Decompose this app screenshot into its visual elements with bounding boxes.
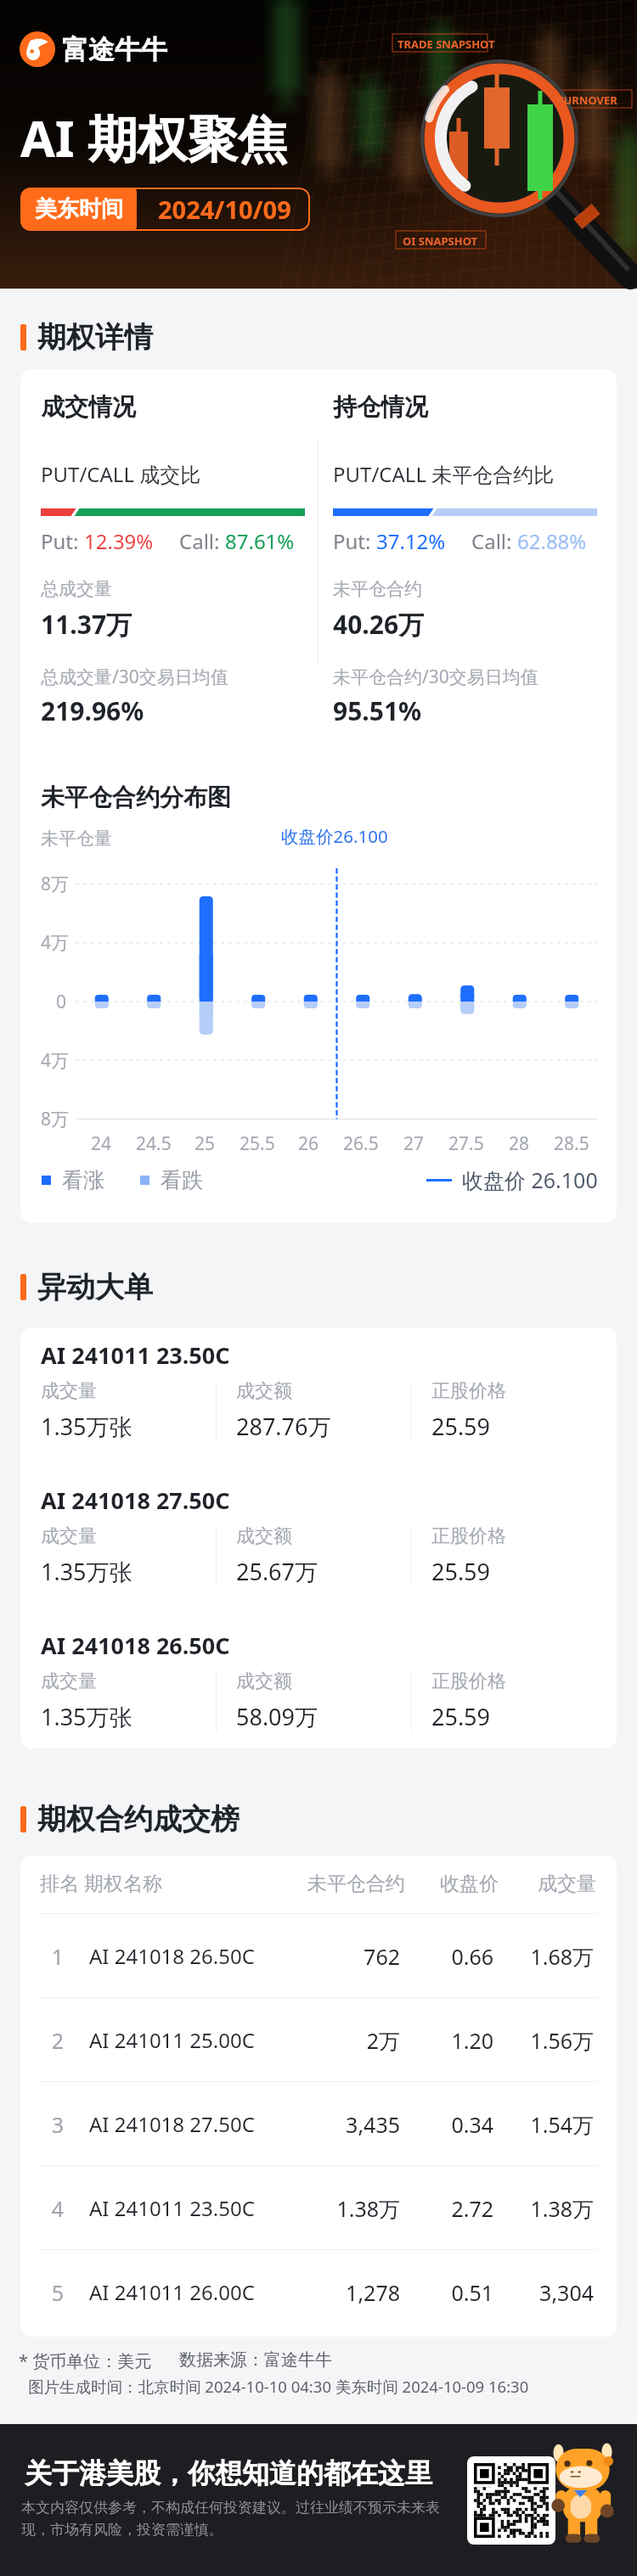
staticText: 4 [40,2194,76,2223]
staticText: 总成交量/30交易日均值 [41,665,228,689]
staticText: 3,304 [496,2278,594,2307]
staticText: 1 [40,1942,76,1971]
staticText: PUT/CALL 未平仓合约比 [333,460,555,488]
staticText: 12.39% [84,527,154,555]
staticText: 未平仓合约分布图 [41,783,231,812]
staticText: 28.5 [554,1131,589,1156]
staticText: 24.5 [136,1131,172,1156]
staticText: 数据来源：富途牛牛 [179,2349,332,2371]
staticText: 24 [91,1131,112,1156]
staticText: 收盘价 [411,1872,499,1896]
staticText: 美东时间 [35,195,123,223]
staticText: 4万 [41,1048,70,1073]
staticText: 正股价格 [431,1524,506,1548]
staticText: 期权名称 [84,1872,162,1896]
staticText: 富途牛牛 [62,33,167,66]
staticText: TURNOVER [557,93,617,108]
staticText: 287.76万 [236,1411,331,1442]
staticText: 异动大单 [37,1269,153,1305]
staticText: 2024/10/09 [158,193,291,226]
staticText: AI 241018 27.50C [41,1484,230,1516]
staticText: 37.12% [376,527,446,555]
staticText: 收盘价 26.100 [462,1165,598,1194]
staticText: 0 [56,990,67,1014]
staticText: 未平仓量 [41,828,112,850]
staticText: 2.72 [403,2194,493,2223]
button[interactable]: 5 [20,2250,617,2334]
staticText: 11.37万 [41,607,132,642]
staticText: 40.26万 [333,607,425,642]
staticText: 1.68万 [496,1942,594,1971]
staticText: 25.5 [240,1131,275,1156]
staticText: 5 [40,2278,76,2307]
staticText: 219.96% [41,693,144,728]
staticText: 成交情况 [41,392,136,422]
staticText: Call: [179,527,225,555]
button[interactable]: AI 241018 27.50C [20,1476,617,1614]
staticText: 未平仓合约/30交易日均值 [333,665,538,689]
staticText: 0.34 [403,2110,493,2139]
staticText: 看涨 [62,1167,104,1193]
staticText: Put: [41,527,84,555]
staticText: 25.59 [431,1556,491,1587]
staticText: 26.5 [343,1131,379,1156]
button[interactable]: 1 [20,1914,617,1998]
staticText: 1.56万 [496,2026,594,2055]
staticText: 成交额 [236,1524,292,1548]
staticText: 25.67万 [236,1556,318,1587]
staticText: 8万 [41,1107,70,1131]
staticText: 成交额 [236,1670,292,1693]
staticText: 62.88% [517,527,587,555]
button[interactable]: 4 [20,2166,617,2250]
staticText: * 货币单位：美元 [19,2349,152,2372]
staticText: AI 241018 26.50C [41,1630,230,1661]
staticText: 成交量 [41,1524,97,1548]
staticText: 4万 [41,930,70,955]
staticText: 未平仓合约 [275,1872,405,1896]
staticText: AI 241018 26.50C [89,1942,255,1970]
staticText: 图片生成时间：北京时间 2024-10-10 04:30 美东时间 2024-1… [28,2376,529,2397]
staticText: 关于港美股，你想知道的都在这里 [25,2456,432,2490]
staticText: 8万 [41,872,70,896]
button[interactable]: AI 241011 23.50C [20,1331,617,1468]
staticText: 26 [298,1131,319,1156]
staticText: 3,435 [267,2110,400,2139]
staticText: 1.35万张 [41,1701,132,1732]
staticText: 25.59 [431,1701,491,1732]
staticText: 期权详情 [37,319,153,356]
staticText: 0.51 [403,2278,493,2307]
staticText: 1.54万 [496,2110,594,2139]
staticText: 28 [509,1131,530,1156]
button[interactable]: AI 241018 26.50C [20,1621,617,1748]
staticText: AI 241011 26.00C [89,2278,255,2306]
staticText: 持仓情况 [333,392,428,422]
staticText: 1.35万张 [41,1556,132,1587]
staticText: 收盘价26.100 [281,824,388,848]
staticText: 1.38万 [267,2194,400,2223]
staticText: 25 [194,1131,216,1156]
button[interactable]: 2 [20,1998,617,2082]
other: 扫码二维码 [467,2456,555,2545]
staticText: 成交额 [236,1379,292,1403]
staticText: 排名 [40,1872,79,1896]
staticText: 1.35万张 [41,1411,132,1442]
staticText: 95.51% [333,693,422,728]
staticText: 27.5 [448,1131,484,1156]
staticText: 2万 [267,2026,400,2055]
staticText: 期权合约成交榜 [37,1801,240,1838]
staticText: Put: [333,527,376,555]
staticText: 87.61% [225,527,295,555]
staticText: 0.66 [403,1942,493,1971]
staticText: 本文内容仅供参考，不构成任何投资建议。过往业绩不预示未来表 现，市场有风险，投资… [21,2499,440,2539]
staticText: 成交量 [41,1379,97,1403]
staticText: PUT/CALL 成交比 [41,460,201,488]
staticText: 成交量 [505,1872,596,1896]
staticText: 1.20 [403,2026,493,2055]
staticText: 总成交量 [41,578,112,600]
staticText: 1,278 [267,2278,400,2307]
staticText: 正股价格 [431,1379,506,1403]
staticText: AI 241011 23.50C [89,2194,255,2222]
button[interactable]: 3 [20,2082,617,2166]
staticText: 27 [403,1131,425,1156]
staticText: AI 241018 27.50C [89,2110,255,2138]
